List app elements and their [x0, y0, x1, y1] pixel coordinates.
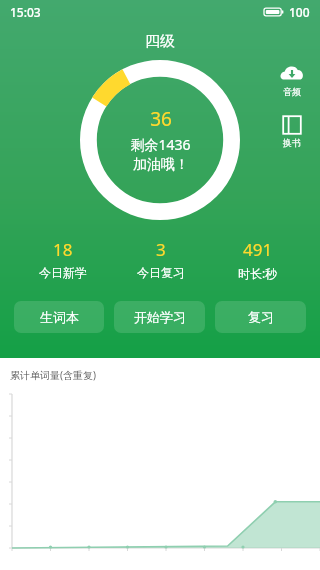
staticText: 换书 — [283, 137, 301, 148]
staticText: 36 — [150, 106, 172, 132]
button[interactable]: 3 — [112, 238, 209, 280]
staticText: 生词本 — [40, 309, 79, 325]
staticText: 15:03 — [10, 4, 41, 20]
staticText: 时长:秒 — [238, 265, 278, 281]
staticText: 100 — [289, 4, 310, 20]
staticText: 今日复习 — [137, 265, 185, 280]
staticText: 音频 — [283, 86, 301, 97]
button[interactable]: 开始学习 — [114, 301, 205, 333]
staticText: 491 — [243, 238, 273, 261]
button[interactable]: 复习 — [215, 301, 306, 333]
staticText: 四级 — [145, 32, 175, 51]
staticText: 18 — [53, 238, 73, 261]
button[interactable]: 生词本 — [14, 301, 104, 333]
staticText: 3 — [156, 238, 166, 261]
button[interactable]: 音频 — [274, 62, 310, 99]
button[interactable]: 491 — [209, 238, 306, 281]
staticText: 累计单词量(含重复) — [10, 368, 96, 382]
staticText: 加油哦！ — [133, 156, 189, 174]
button[interactable]: 换书 — [276, 113, 308, 150]
button[interactable]: 18 — [14, 238, 112, 280]
staticText: 开始学习 — [134, 309, 186, 325]
staticText: 剩余1436 — [130, 135, 191, 154]
staticText: 复习 — [248, 309, 274, 325]
staticText: 今日新学 — [39, 265, 87, 280]
